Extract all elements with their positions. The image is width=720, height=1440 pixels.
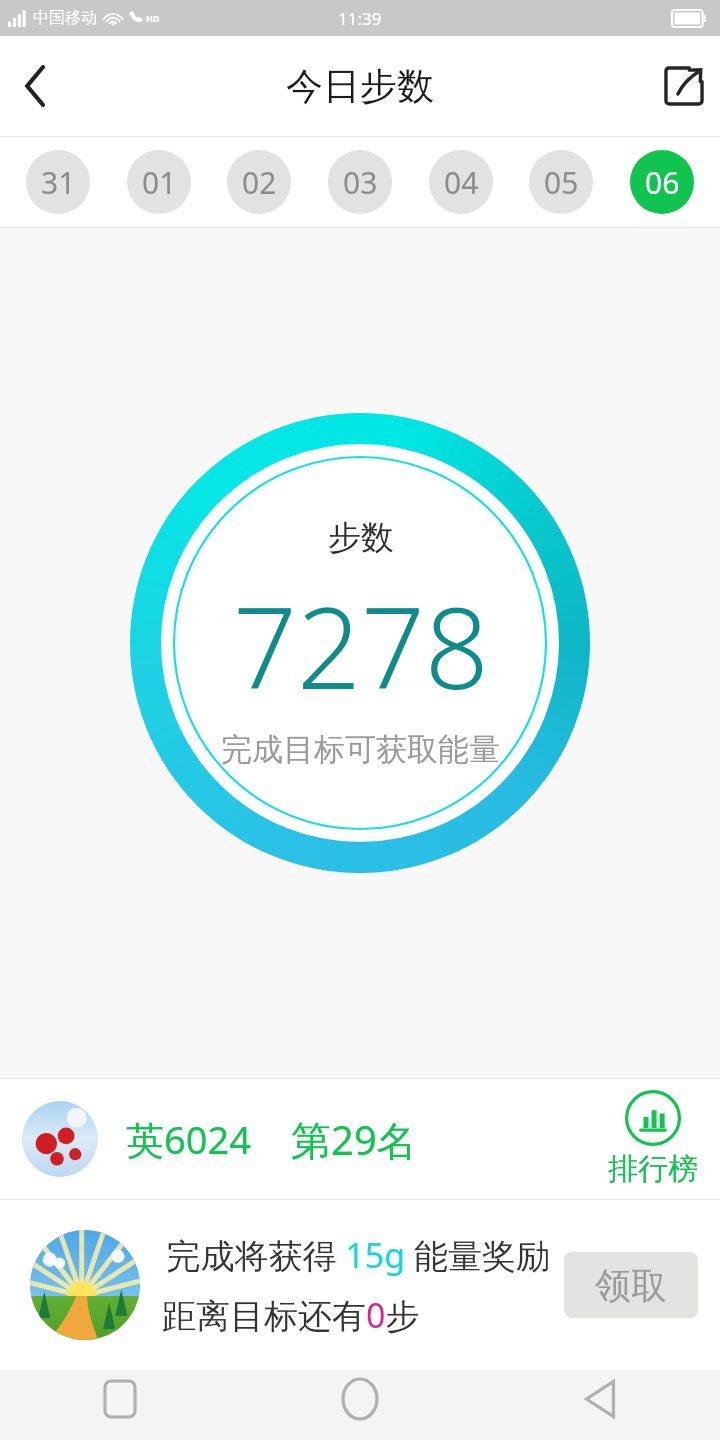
staticText: 完成目标可获取能量 xyxy=(221,730,500,769)
staticText: 06 xyxy=(645,162,680,203)
staticText: 距离目标还有0步 xyxy=(162,1292,550,1338)
button[interactable]: Share xyxy=(648,50,720,122)
button[interactable]: 05 xyxy=(529,150,593,214)
staticText: 05 xyxy=(544,162,579,203)
button[interactable]: 04 xyxy=(429,150,493,214)
staticText: 排行榜 xyxy=(608,1150,698,1188)
staticText: 01 xyxy=(142,162,177,203)
staticText: 步数 xyxy=(328,517,394,559)
staticText: 今日步数 xyxy=(286,63,434,110)
staticText: 完成将获得 15g 能量奖励 xyxy=(162,1232,550,1278)
staticText: 英6024 xyxy=(126,1113,251,1165)
button[interactable]: 01 xyxy=(127,150,191,214)
button[interactable]: Back xyxy=(0,50,72,122)
button[interactable]: 03 xyxy=(328,150,392,214)
button[interactable]: Home xyxy=(240,1370,480,1440)
staticText: 31 xyxy=(41,162,76,203)
button[interactable]: 排行榜 xyxy=(608,1090,698,1188)
staticText: 中国移动 xyxy=(33,8,97,28)
staticText: HD xyxy=(146,12,160,24)
staticText: 领取 xyxy=(595,1263,667,1308)
button[interactable]: 英6024 xyxy=(0,1079,720,1199)
staticText: 7278 xyxy=(233,569,489,722)
button[interactable]: 02 xyxy=(227,150,291,214)
button[interactable]: 31 xyxy=(26,150,90,214)
button[interactable]: 领取 xyxy=(564,1252,698,1318)
staticText: 03 xyxy=(343,162,378,203)
staticText: 02 xyxy=(242,162,277,203)
button[interactable]: 06 xyxy=(630,150,694,214)
staticText: 第29名 xyxy=(291,1112,417,1167)
button[interactable]: Recents xyxy=(0,1370,240,1440)
staticText: 04 xyxy=(444,162,479,203)
button[interactable]: Back xyxy=(480,1370,720,1440)
staticText: 11:39 xyxy=(338,7,382,30)
